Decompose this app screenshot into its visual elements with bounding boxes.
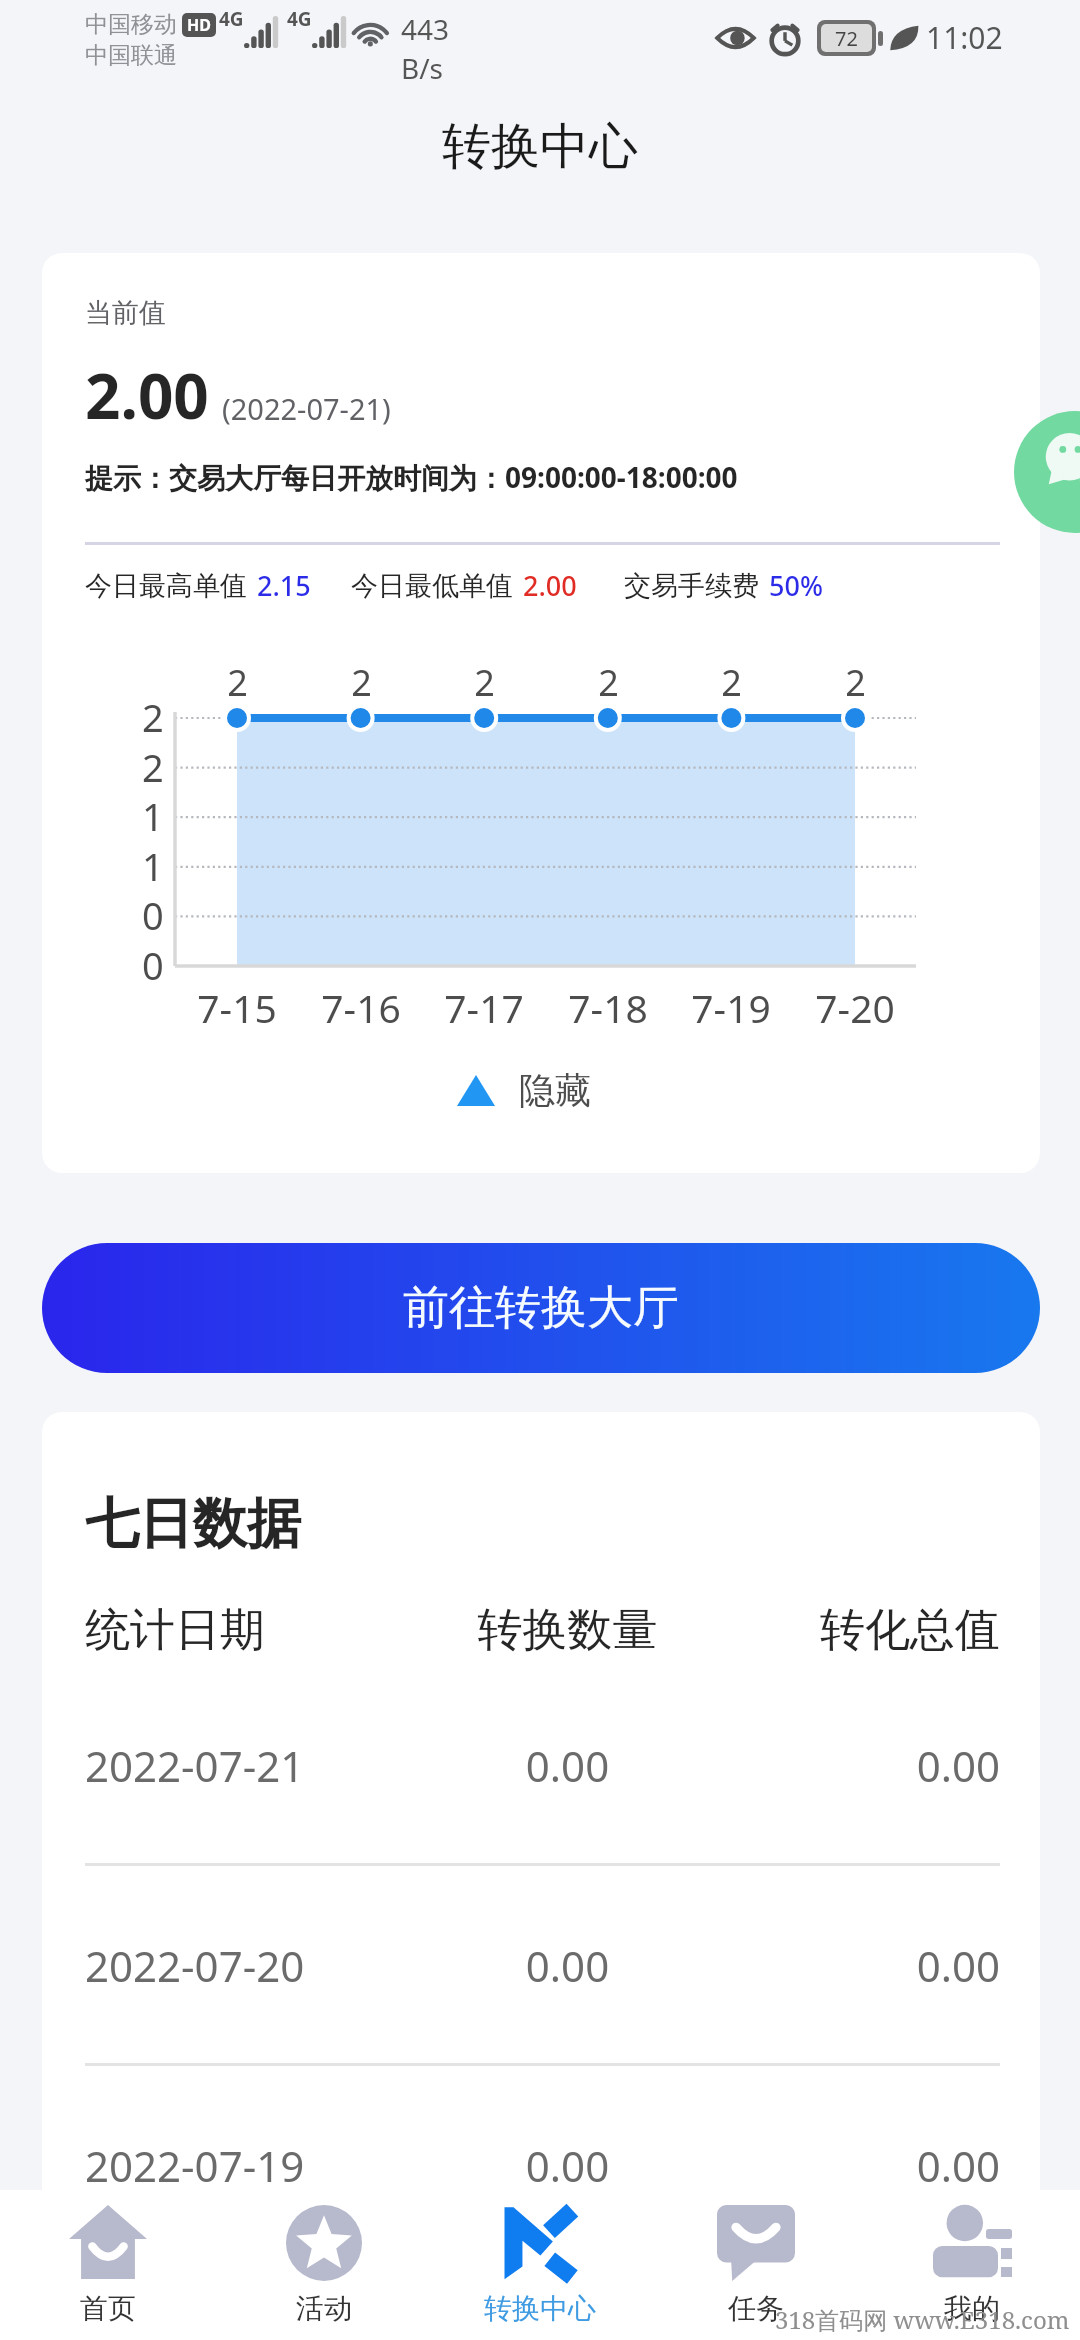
staticText: 2	[142, 691, 164, 743]
staticText: 7-20	[815, 981, 895, 1034]
staticText: 0	[142, 939, 164, 991]
staticText: 7-19	[691, 981, 771, 1034]
staticText: 我的	[944, 2291, 1000, 2326]
staticText: 11:02	[926, 17, 1003, 58]
button[interactable]: WeChat	[1014, 411, 1080, 533]
button[interactable]: 隐藏	[457, 1050, 637, 1130]
staticText: 4G	[219, 6, 244, 32]
staticText: 转换数量	[335, 1602, 800, 1659]
staticText: 72	[835, 25, 858, 52]
staticText: 0.00	[335, 2137, 800, 2194]
staticText: 中国移动	[85, 10, 177, 39]
staticText: 2	[474, 658, 495, 707]
staticText: 0.00	[335, 1937, 800, 1994]
staticText: 任务	[728, 2291, 784, 2326]
staticText: 0.00	[335, 1737, 800, 1794]
staticText: 当前值	[85, 296, 166, 330]
button[interactable]: 我的	[864, 2190, 1080, 2340]
staticText: 首页	[80, 2291, 136, 2326]
button[interactable]: 2022-07-19	[85, 2120, 1000, 2210]
staticText: 7-16	[321, 981, 401, 1034]
button[interactable]: 首页	[0, 2190, 216, 2340]
staticText: 7-18	[568, 981, 648, 1034]
staticText: 今日最高单值	[85, 569, 247, 603]
staticText: 今日最低单值	[351, 569, 513, 603]
staticText: 2	[142, 741, 164, 793]
staticText: 2.00	[523, 567, 577, 604]
staticText: 443	[401, 10, 450, 48]
staticText: 0.00	[800, 2137, 1000, 2194]
staticText: 7-17	[444, 981, 524, 1034]
staticText: 50%	[769, 567, 823, 604]
button[interactable]: 转换中心	[432, 2190, 648, 2340]
staticText: 提示：交易大厅每日开放时间为：09:00:00-18:00:00	[85, 458, 738, 496]
staticText: 活动	[296, 2291, 352, 2326]
staticText: 2.00	[85, 353, 209, 437]
staticText: B/s	[401, 49, 444, 87]
staticText: 转换中心	[484, 2291, 596, 2326]
staticText: 2	[227, 658, 248, 707]
staticText: (2022-07-21)	[222, 389, 391, 428]
staticText: 7-15	[197, 981, 277, 1034]
staticText: 2	[598, 658, 619, 707]
button[interactable]: 活动	[216, 2190, 432, 2340]
staticText: 统计日期	[85, 1602, 335, 1659]
staticText: HD	[187, 14, 211, 36]
button[interactable]: 2022-07-20	[85, 1920, 1000, 2010]
staticText: 2	[351, 658, 372, 707]
button[interactable]: 2022-07-21	[85, 1720, 1000, 1810]
staticText: 2	[845, 658, 866, 707]
staticText: 转化总值	[800, 1602, 1000, 1659]
staticText: 中国联通	[85, 41, 177, 70]
staticText: 七日数据	[85, 1490, 301, 1558]
staticText: 0	[142, 889, 164, 941]
staticText: 2022-07-21	[85, 1737, 335, 1794]
button[interactable]: 任务	[648, 2190, 864, 2340]
staticText: 交易手续费	[624, 569, 759, 603]
staticText: 2.15	[257, 567, 311, 604]
staticText: 2	[721, 658, 742, 707]
staticText: 4G	[287, 6, 312, 32]
staticText: 2022-07-20	[85, 1937, 335, 1994]
staticText: 1	[142, 790, 164, 842]
staticText: 0.00	[800, 1737, 1000, 1794]
staticText: 0.00	[800, 1937, 1000, 1994]
button[interactable]: 前往转换大厅	[42, 1243, 1040, 1373]
staticText: 转换中心	[442, 116, 638, 178]
staticText: 隐藏	[519, 1068, 591, 1113]
staticText: 2022-07-19	[85, 2137, 335, 2194]
staticText: 前往转换大厅	[403, 1279, 679, 1337]
staticText: 1	[142, 840, 164, 892]
staticText: 318首码网 www.E318.com	[775, 2303, 1070, 2336]
